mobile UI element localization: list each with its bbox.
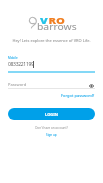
staticText: Don't have an account? xyxy=(0,126,103,130)
staticText: Forgot password? xyxy=(61,93,95,98)
button[interactable]: Password xyxy=(8,79,95,89)
staticText: Password xyxy=(8,82,27,87)
button[interactable]: Show password xyxy=(87,81,96,90)
staticText: V xyxy=(40,15,48,26)
staticText: Mobile xyxy=(8,56,18,60)
staticText: Hey! Lets explore the essence of VRO Lif… xyxy=(0,38,103,43)
staticText: RO xyxy=(48,15,65,26)
staticText: LOGIN xyxy=(45,112,59,117)
staticText: barrows xyxy=(37,20,77,32)
button[interactable]: Forgot password? xyxy=(57,90,99,101)
button[interactable]: Sign up xyxy=(40,130,63,140)
button[interactable]: LOGIN xyxy=(8,108,95,120)
staticText: Sign up xyxy=(46,133,57,137)
staticText: 0833221199 xyxy=(8,61,34,68)
button[interactable]: Mobile xyxy=(8,54,95,73)
